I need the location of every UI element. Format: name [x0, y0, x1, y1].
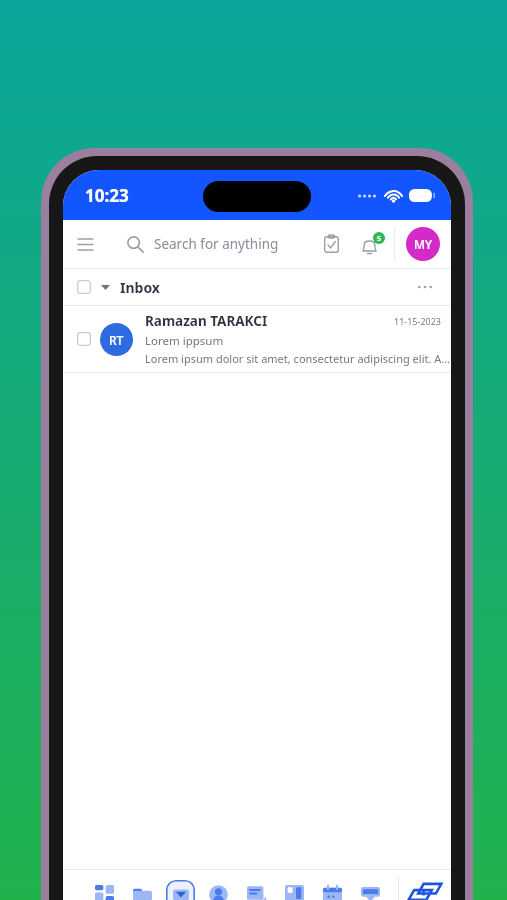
button[interactable]: Boards — [275, 873, 313, 900]
button[interactable]: RT — [63, 306, 451, 372]
button[interactable]: Menu — [63, 222, 107, 266]
button[interactable]: Calendar — [313, 873, 351, 900]
staticText: 5 — [377, 233, 382, 243]
button[interactable]: Dashboard — [85, 873, 123, 900]
button[interactable]: Mail — [161, 873, 199, 900]
button[interactable]: Inbox — [63, 269, 451, 305]
staticText: 11-15-2023 — [394, 315, 441, 327]
button[interactable]: Notes — [237, 873, 275, 900]
staticText: 10:23 — [85, 184, 129, 207]
staticText: Ramazan TARAKCI — [145, 312, 268, 330]
staticText: MY — [414, 236, 433, 252]
button[interactable]: MY — [395, 220, 451, 268]
button[interactable]: Folders — [123, 873, 161, 900]
button[interactable]: App logo — [399, 870, 451, 900]
staticText: Search for anything — [154, 235, 279, 253]
staticText: Lorem ipsum dolor sit amet, consectetur … — [145, 351, 451, 366]
staticText: RT — [109, 332, 124, 348]
button[interactable]: Notifications — [352, 223, 394, 265]
staticText: Lorem ippsum — [145, 333, 224, 349]
staticText: Inbox — [120, 278, 160, 297]
button[interactable]: Search for anything — [107, 220, 310, 268]
button[interactable]: Archive — [351, 873, 389, 900]
button[interactable]: Contacts — [199, 873, 237, 900]
button[interactable]: More options — [407, 269, 443, 305]
button[interactable]: Tasks — [310, 223, 352, 265]
